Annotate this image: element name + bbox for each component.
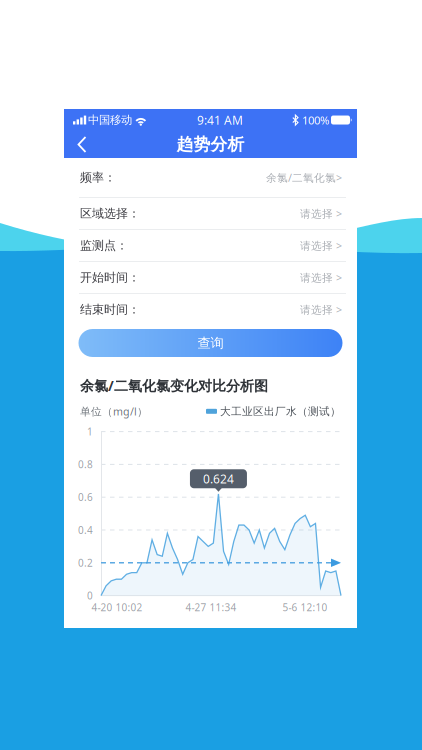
staticText: 1 [87, 425, 93, 438]
button[interactable]: 开始时间： [64, 262, 357, 294]
staticText: 趋势分析 [176, 134, 244, 155]
button[interactable]: 查询 [78, 329, 342, 357]
staticText: 0.2 [78, 556, 93, 570]
staticText: 100% [299, 112, 329, 128]
staticText: 0.624 [203, 471, 234, 487]
staticText: 4-20 10:02 [91, 601, 142, 614]
staticText: 请选择 > [300, 206, 342, 221]
staticText: 区域选择： [80, 206, 140, 221]
staticText: 中国移动 [88, 113, 132, 127]
button[interactable]: Back [64, 131, 104, 158]
button[interactable]: 区域选择： [64, 198, 357, 230]
staticText: 开始时间： [80, 270, 140, 285]
staticText: 0 [87, 589, 93, 602]
button[interactable]: 频率： [64, 158, 357, 198]
staticText: 单位（mg/l） [80, 404, 148, 419]
staticText: 频率： [80, 170, 116, 185]
staticText: 查询 [197, 335, 223, 351]
staticText: 请选择 > [300, 302, 342, 317]
staticText: 大工业区出厂水（测试） [217, 405, 341, 418]
staticText: 余氯/二氧化氯> [266, 170, 342, 185]
staticText: 请选择 > [300, 238, 342, 253]
staticText: 4-27 11:34 [185, 601, 236, 614]
button[interactable]: 监测点： [64, 230, 357, 262]
staticText: 0.8 [78, 458, 93, 471]
staticText: 余氯/二氧化氯变化对比分析图 [80, 376, 268, 395]
staticText: 0.4 [78, 523, 93, 537]
staticText: 5-6 12:10 [282, 601, 327, 614]
staticText: 0.6 [78, 490, 93, 504]
staticText [329, 115, 331, 125]
staticText: 请选择 > [300, 270, 342, 285]
staticText: 9:41 AM [197, 112, 243, 128]
button[interactable]: 结束时间： [64, 294, 357, 326]
staticText: 结束时间： [80, 302, 140, 317]
staticText: 监测点： [80, 238, 128, 253]
